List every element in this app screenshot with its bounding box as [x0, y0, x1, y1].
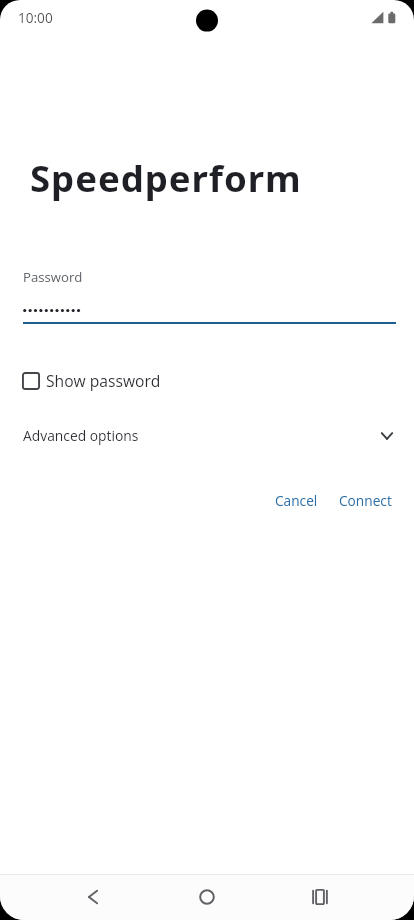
staticText: Advanced options [23, 427, 139, 445]
staticText: 10:00 [18, 10, 53, 27]
button[interactable]: Recent apps [297, 874, 343, 920]
button[interactable]: Cancel [267, 486, 326, 516]
staticText: Show password [46, 371, 161, 391]
staticText: Password [23, 268, 83, 286]
button[interactable]: Connect [331, 486, 400, 516]
staticText: Connect [339, 493, 392, 509]
button[interactable]: Home [184, 874, 230, 920]
staticText: Speedperform [30, 157, 302, 201]
staticText: Cancel [275, 493, 318, 509]
button[interactable]: Advanced options [0, 420, 414, 452]
button[interactable]: Back [70, 874, 116, 920]
button[interactable]: Show password [0, 364, 414, 398]
